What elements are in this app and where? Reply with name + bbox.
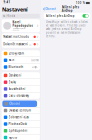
staticText: Obecné <box>9 102 20 105</box>
staticText: Zpřístupnění <box>9 129 28 132</box>
button[interactable]: Ovládací centrum <box>2 107 40 114</box>
button[interactable]: Čas u obrazovky <box>2 92 40 99</box>
button[interactable]: Soustředění <box>2 86 40 92</box>
staticText: Čas u obrazovky <box>9 94 29 97</box>
staticText: Nastavení <box>2 6 28 13</box>
staticText: 100 % <box>76 1 85 5</box>
staticText: Ovládací centrum <box>9 109 31 112</box>
button[interactable]: Letový režim <box>2 50 40 57</box>
staticText: Tapeta <box>9 136 17 139</box>
staticText: Nastavit na iCloudu <box>3 35 29 39</box>
button[interactable]: Zvuky <box>2 79 40 85</box>
staticText: a nákupy <box>13 29 20 31</box>
button[interactable]: Obecné <box>41 7 56 11</box>
staticText: Karel <box>13 20 21 24</box>
staticText: Umožňuje sdílet obsah s lidmi ve vašem o… <box>46 20 88 38</box>
staticText: Soustředění <box>9 87 26 91</box>
button[interactable]: Zpřístupnění <box>2 127 40 134</box>
button[interactable]: Obecné <box>2 100 40 107</box>
button[interactable]: Wi-Fi <box>2 57 40 63</box>
button[interactable]: Dokončit nastavení iPadu <box>2 41 40 48</box>
staticText: Plocha a Dock <box>9 122 27 126</box>
staticText: 9:41 <box>4 0 11 4</box>
button[interactable]: Plocha a Dock <box>2 121 40 127</box>
staticText: Bluetooth <box>9 65 24 69</box>
button[interactable]: Karel <box>0 19 41 32</box>
button[interactable]: Tapeta <box>2 134 40 140</box>
staticText: Letový režim <box>9 52 24 55</box>
button[interactable]: Nastavit na iCloudu <box>2 33 40 40</box>
staticText: Zvuky <box>9 80 16 84</box>
staticText: Apple ID, iCloud, média <box>13 27 26 29</box>
staticText: Zobrazení a jas <box>9 115 29 119</box>
staticText: Hledat <box>6 14 15 18</box>
button[interactable]: Sdílení přes AirDrop <box>82 14 89 18</box>
staticText: Wi-Fi <box>9 58 15 62</box>
staticText: Papadopulos <box>13 24 33 27</box>
staticText: Doma <box>31 58 38 62</box>
staticText: Obecné <box>45 7 56 11</box>
staticText: Sdílení přes AirDrop <box>62 5 79 13</box>
staticText: Zap. <box>32 65 38 69</box>
staticText: Dokončit nastavení iPadu <box>3 42 31 46</box>
button[interactable]: Zobrazení a jas <box>2 114 40 120</box>
staticText: Sdílení přes AirDrop <box>46 14 75 18</box>
button[interactable]: Bluetooth <box>2 64 40 70</box>
button[interactable]: Oznámení <box>2 72 40 79</box>
staticText: Oznámení <box>9 74 22 77</box>
